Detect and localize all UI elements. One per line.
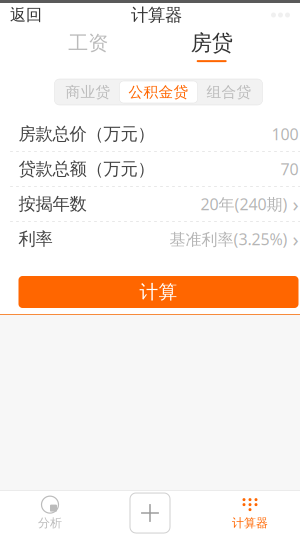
button[interactable]: 房款总价（万元） bbox=[8, 117, 300, 151]
staticText: 计算 bbox=[139, 280, 177, 303]
staticText: 基准利率(3.25%) bbox=[169, 228, 287, 250]
staticText: 贷款总额（万元） bbox=[18, 158, 154, 180]
staticText: 按揭年数 bbox=[18, 193, 86, 215]
button[interactable]: Add bbox=[100, 491, 200, 535]
staticText: 公积金贷 bbox=[128, 83, 188, 101]
button[interactable]: 按揭年数 bbox=[8, 187, 300, 221]
staticText: 房贷 bbox=[191, 30, 233, 56]
button[interactable]: 贷款总额（万元） bbox=[8, 152, 300, 186]
button[interactable]: 分析 bbox=[0, 491, 100, 535]
staticText: 70 bbox=[280, 158, 298, 180]
staticText: 利率 bbox=[18, 228, 52, 250]
button[interactable]: 利率 bbox=[8, 222, 300, 256]
button[interactable]: 房贷 bbox=[177, 28, 247, 64]
button[interactable]: 返回 bbox=[0, 2, 52, 28]
button[interactable]: 工资 bbox=[53, 28, 123, 64]
staticText: 返回 bbox=[10, 5, 42, 25]
button[interactable]: 组合贷 bbox=[197, 81, 260, 103]
staticText: 计算器 bbox=[131, 4, 182, 26]
staticText: 工资 bbox=[68, 31, 108, 55]
staticText: 计算器 bbox=[232, 516, 268, 530]
staticText: 商业贷 bbox=[65, 83, 110, 101]
staticText: 100 bbox=[271, 123, 298, 145]
staticText: 组合贷 bbox=[206, 83, 251, 101]
staticText: › bbox=[292, 226, 298, 252]
button[interactable]: 商业贷 bbox=[56, 81, 119, 103]
staticText: 房款总价（万元） bbox=[18, 123, 154, 145]
staticText: 20年(240期) bbox=[200, 193, 287, 215]
staticText: 分析 bbox=[38, 516, 62, 530]
button[interactable]: More bbox=[261, 2, 300, 28]
button[interactable]: 公积金贷 bbox=[119, 81, 197, 103]
button[interactable]: 计算 bbox=[18, 276, 298, 308]
staticText: › bbox=[292, 191, 298, 217]
button[interactable]: 计算器 bbox=[200, 491, 300, 535]
